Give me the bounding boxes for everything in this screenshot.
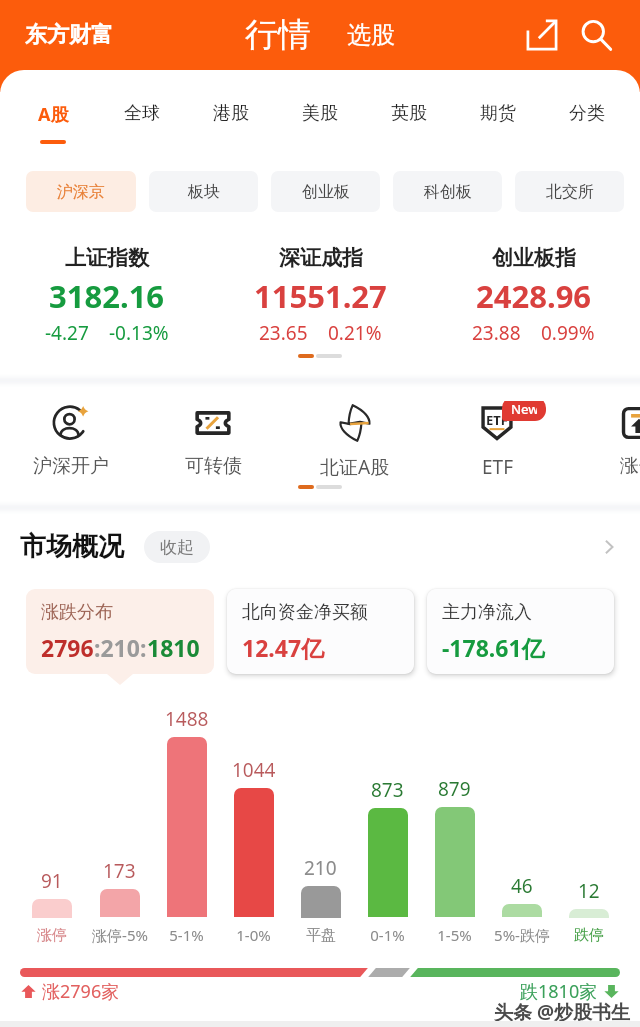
staticText: 涨停-5%: [92, 925, 148, 945]
button[interactable]: 英股: [364, 92, 453, 142]
staticText: 46: [511, 873, 533, 899]
staticText: 11551.27: [254, 275, 387, 317]
button[interactable]: Share: [521, 14, 563, 56]
staticText: 英股: [391, 102, 427, 125]
staticText: 1-0%: [236, 925, 271, 945]
staticText: 科创板: [424, 182, 472, 202]
staticText: 沪深京: [57, 182, 105, 202]
button[interactable]: A股: [9, 92, 97, 144]
staticText: 5-1%: [169, 925, 204, 945]
staticText: 跌停: [574, 926, 604, 945]
staticText: 市场概况: [20, 530, 124, 563]
staticText: 873: [371, 777, 404, 803]
staticText: 涨2796家: [42, 979, 120, 1004]
staticText: 涨停: [37, 926, 67, 945]
staticText: 美股: [302, 102, 338, 125]
staticText: 23.65: [259, 320, 308, 346]
staticText: 深证成指: [279, 245, 363, 271]
staticText: 0.21%: [328, 320, 382, 346]
button[interactable]: 收起: [144, 531, 210, 563]
staticText: 板块: [188, 182, 220, 202]
staticText: 210: [304, 855, 337, 881]
staticText: :210:: [94, 632, 147, 663]
staticText: 行情: [245, 14, 311, 56]
button[interactable]: 美股: [275, 92, 364, 142]
button[interactable]: 北交所: [515, 171, 624, 212]
staticText: 头条 @炒股书生: [494, 999, 631, 1021]
staticText: 分类: [569, 102, 605, 125]
staticText: 5%-跌停: [494, 925, 550, 945]
staticText: 879: [438, 776, 471, 802]
button[interactable]: 深证成指: [214, 245, 427, 346]
staticText: 全球: [124, 102, 160, 125]
staticText: -178.61亿: [442, 632, 545, 663]
staticText: 北交所: [546, 182, 594, 202]
staticText: 北证A股: [320, 454, 390, 479]
staticText: 3182.16: [49, 275, 165, 317]
staticText: 平盘: [306, 926, 336, 945]
staticText: New: [511, 401, 537, 418]
staticText: 可转债: [185, 454, 242, 478]
staticText: 主力净流入: [442, 601, 532, 624]
button[interactable]: 可转债: [142, 401, 284, 478]
button[interactable]: 沪深开户: [0, 401, 142, 478]
staticText: ETF: [482, 454, 513, 479]
button[interactable]: 创业板指: [427, 245, 640, 346]
staticText: 选股: [347, 20, 395, 50]
button[interactable]: 北证A股: [284, 401, 426, 479]
staticText: 1488: [165, 706, 209, 732]
button[interactable]: 创业板: [271, 171, 380, 212]
button[interactable]: 板块: [149, 171, 258, 212]
button[interactable]: More: [594, 532, 624, 562]
staticText: 东方财富: [25, 21, 113, 49]
staticText: 上证指数: [65, 245, 149, 271]
staticText: 创业板指: [492, 245, 576, 271]
button[interactable]: 涨跌分布: [26, 589, 214, 674]
staticText: 跌1810家: [520, 979, 598, 1004]
staticText: 港股: [213, 102, 249, 125]
button[interactable]: 主力净流入: [427, 589, 614, 674]
staticText: 1810: [147, 632, 200, 663]
staticText: A股: [38, 102, 69, 127]
button[interactable]: 上证指数: [0, 245, 214, 346]
button[interactable]: 科创板: [393, 171, 502, 212]
button[interactable]: 港股: [186, 92, 275, 142]
staticText: 12: [578, 878, 600, 904]
button[interactable]: 期货: [453, 92, 542, 142]
staticText: ETF: [486, 411, 508, 429]
staticText: 2428.96: [476, 275, 592, 317]
button[interactable]: Search: [575, 14, 617, 56]
staticText: 涨停: [620, 454, 640, 478]
button[interactable]: 涨停: [568, 401, 640, 478]
button[interactable]: 全球: [97, 92, 186, 142]
staticText: 173: [103, 858, 136, 884]
staticText: 23.88: [472, 320, 521, 346]
staticText: 1044: [232, 757, 276, 783]
staticText: 0.99%: [541, 320, 595, 346]
staticText: 北向资金净买额: [242, 601, 368, 624]
staticText: 2796: [41, 632, 94, 663]
staticText: 12.47亿: [242, 632, 325, 663]
button[interactable]: ETF: [426, 401, 568, 479]
button[interactable]: 北向资金净买额: [227, 589, 414, 674]
staticText: 91: [41, 868, 63, 894]
staticText: 收起: [160, 537, 194, 558]
button[interactable]: 沪深京: [26, 171, 136, 212]
staticText: 涨跌分布: [41, 601, 113, 624]
staticText: 期货: [480, 102, 516, 125]
staticText: 沪深开户: [33, 454, 109, 478]
staticText: 0-1%: [370, 925, 405, 945]
staticText: 创业板: [302, 182, 350, 202]
button[interactable]: 分类: [542, 92, 631, 142]
staticText: -0.13%: [109, 320, 169, 346]
staticText: -4.27: [45, 320, 89, 346]
staticText: 1-5%: [437, 925, 472, 945]
